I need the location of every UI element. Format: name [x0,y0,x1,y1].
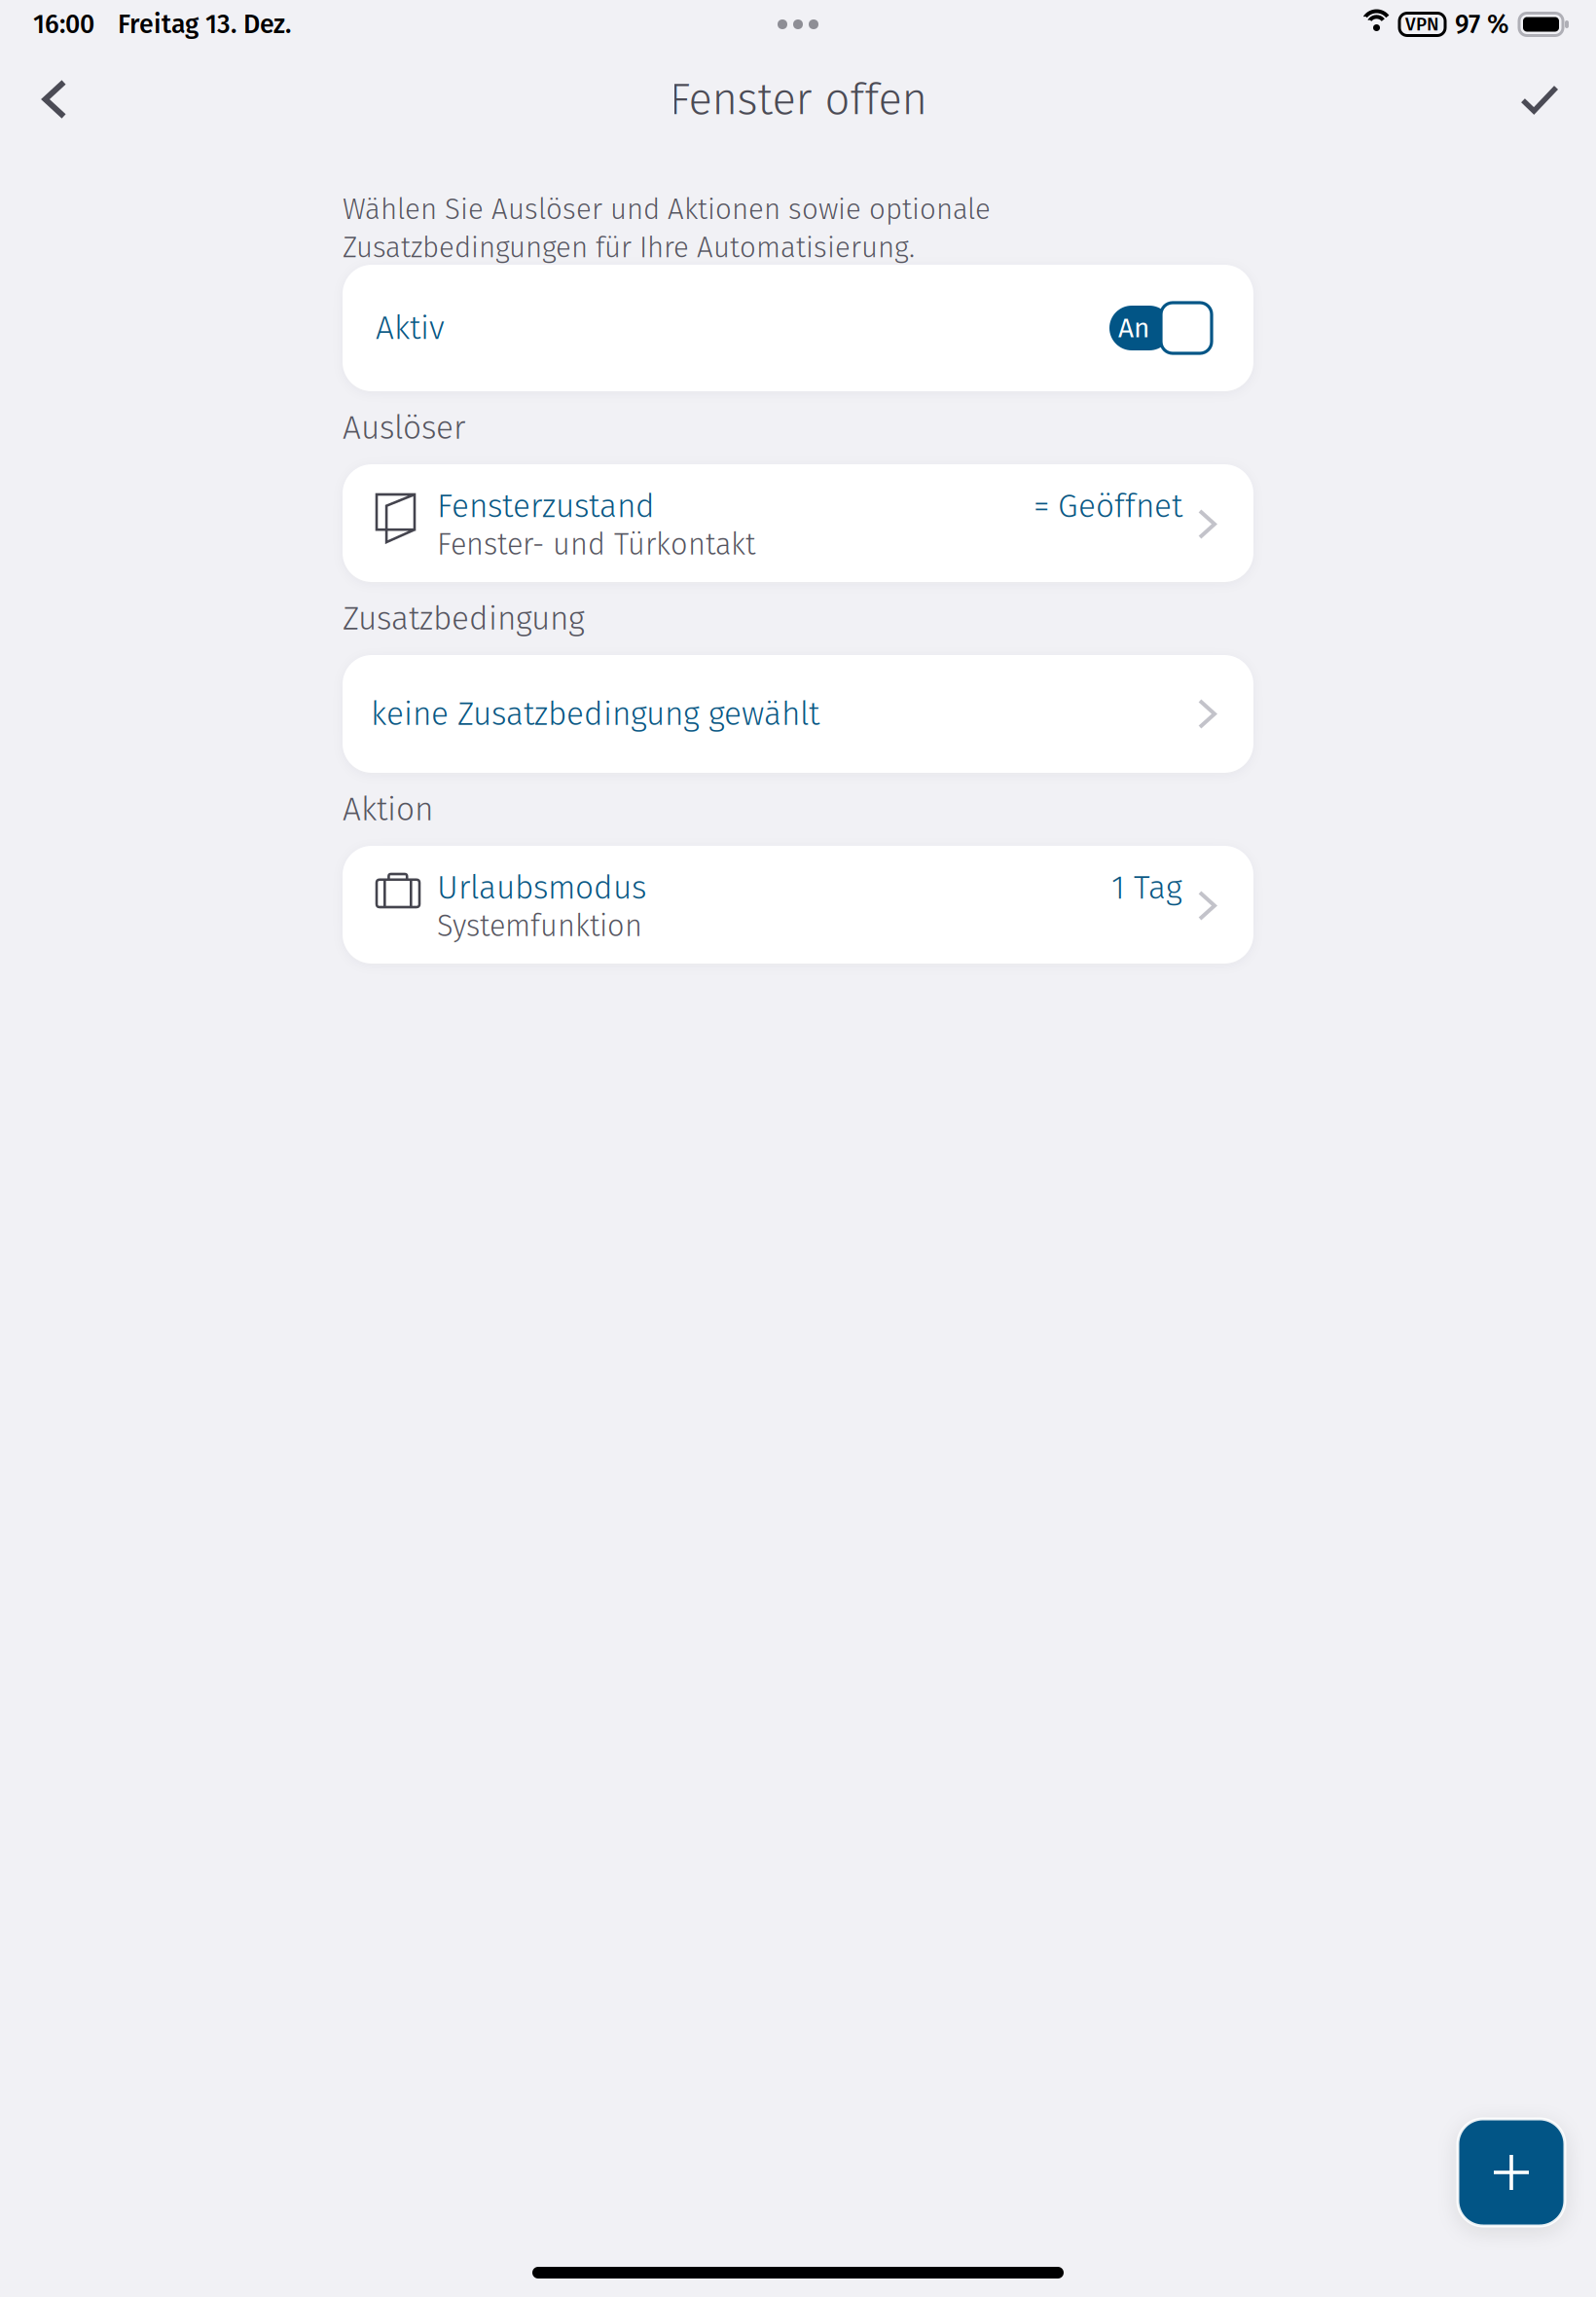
button[interactable]: Zurück [8,49,101,150]
staticText: Zusatzbedingungen für Ihre Automatisieru… [343,230,915,265]
staticText: Fensterzustand [437,487,655,526]
button[interactable]: keine Zusatzbedingung gewählt [343,655,1253,773]
staticText: VPN [1405,13,1439,35]
staticText: Auslöser [343,408,465,447]
staticText: An [1118,312,1149,344]
staticText: 97 % [1455,9,1509,40]
staticText: Fenster offen [669,73,927,126]
button[interactable]: Fensterzustand [343,464,1253,582]
staticText: Zusatzbedingung [343,599,585,638]
button[interactable]: Hinzufügen [1458,2119,1565,2226]
staticText: 16:00 [33,9,94,40]
staticText: Wählen Sie Auslöser und Aktionen sowie o… [343,192,991,227]
staticText: keine Zusatzbedingung gewählt [371,694,819,733]
staticText: Aktiv [376,309,445,347]
button[interactable]: Fertig [1493,49,1586,150]
staticText: Systemfunktion [437,908,642,944]
staticText: Urlaubsmodus [437,868,646,907]
button[interactable]: Urlaubsmodus [343,846,1253,964]
staticText: Freitag 13. Dez. [118,9,291,40]
staticText: = Geöffnet [1034,487,1182,526]
staticText: 1 Tag [1111,868,1182,907]
staticText: Fenster- und Türkontakt [437,527,755,562]
button[interactable]: Aktiv [343,265,1253,391]
staticText: Aktion [343,790,433,829]
